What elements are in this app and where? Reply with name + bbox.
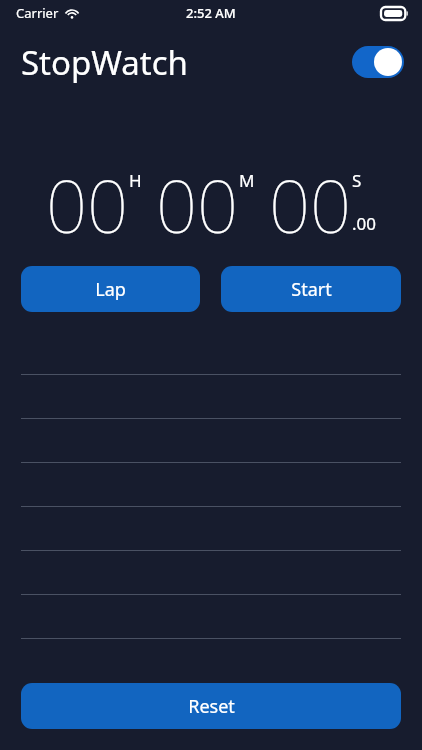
staticText: StopWatch [21,40,188,85]
staticText: 00 [46,156,129,246]
staticText: 2:52 AM [186,4,236,22]
staticText: 00 [156,156,239,246]
staticText: H [129,169,142,192]
button[interactable]: Toggle stopwatch [352,46,404,78]
button[interactable]: Start [221,266,401,312]
staticText: Carrier [16,4,59,22]
staticText: Start [291,277,332,302]
staticText: S [352,169,362,192]
button[interactable]: Lap [21,266,200,312]
staticText: M [239,169,255,192]
button[interactable]: Reset [21,683,401,729]
staticText: .00 [352,212,377,235]
staticText: 00 [269,156,352,246]
staticText: Reset [188,694,235,719]
staticText: Lap [95,277,126,302]
